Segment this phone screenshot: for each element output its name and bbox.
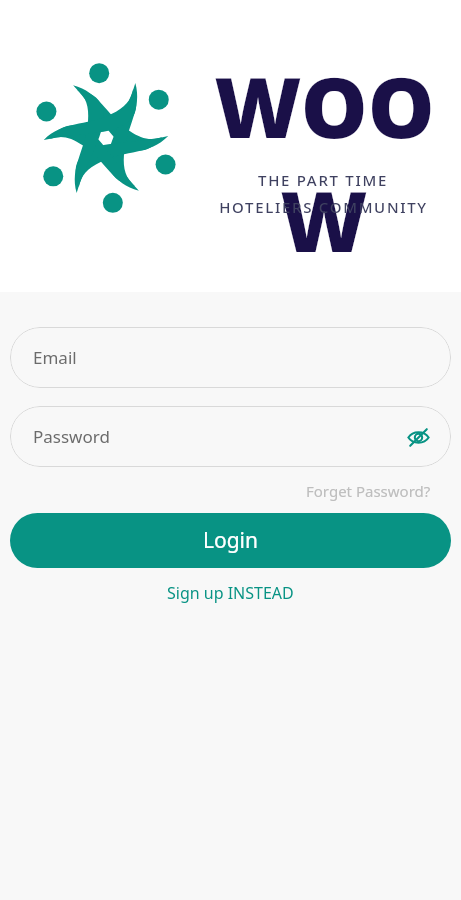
staticText: THE PART TIME	[258, 170, 388, 190]
button[interactable]: Email	[10, 327, 451, 388]
staticText: WOOW	[196, 48, 452, 276]
staticText: Login	[203, 526, 259, 555]
staticText: Forget Password?	[306, 481, 431, 501]
button[interactable]: Sign up INSTEAD	[159, 579, 302, 607]
button[interactable]: Show password	[399, 418, 437, 456]
staticText: Password	[33, 425, 110, 448]
button[interactable]: Login	[10, 513, 451, 568]
button[interactable]: Forget Password?	[300, 478, 461, 504]
staticText: Email	[33, 346, 77, 369]
staticText: HOTELIERS COMMUNITY	[219, 197, 428, 217]
button[interactable]: Password	[10, 406, 451, 467]
staticText: Sign up INSTEAD	[167, 582, 294, 604]
